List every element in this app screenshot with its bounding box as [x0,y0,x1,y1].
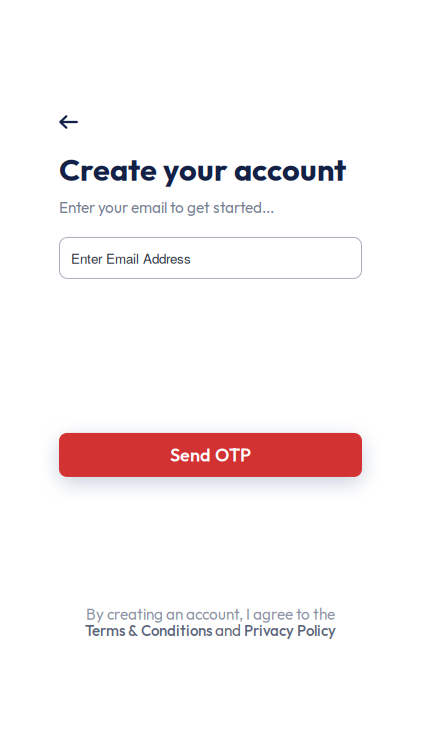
staticText: Send OTP [170,444,251,466]
staticText: Enter your email to get started... [59,198,274,217]
staticText: Enter Email Address [71,248,191,267]
staticText: By creating an account, I agree to the [86,604,335,624]
staticText: Privacy Policy [244,621,336,640]
staticText: and [215,621,241,640]
staticText: Terms & Conditions [85,621,212,640]
button[interactable]: Terms & Conditions [85,621,212,640]
button[interactable]: Privacy Policy [244,621,336,640]
staticText: Create your account [59,150,346,189]
button[interactable]: Send OTP [59,433,362,477]
button[interactable]: Back [59,107,103,139]
